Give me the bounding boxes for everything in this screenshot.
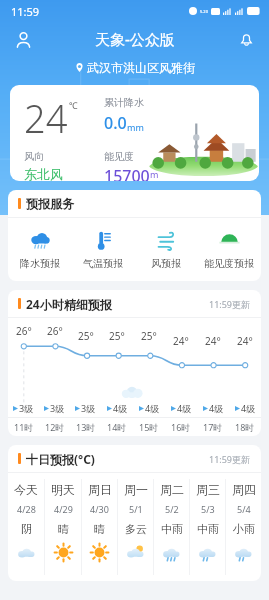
staticText: 25° [141, 329, 157, 343]
button[interactable]: 明天 [45, 473, 81, 581]
staticText: 周一 [124, 482, 148, 497]
staticText: 3级 [50, 402, 65, 414]
staticText: 15700 [104, 165, 150, 181]
button[interactable]: 24小时精细预报 [8, 290, 261, 436]
staticText: 5/4 [237, 503, 251, 515]
staticText: 4/30 [90, 503, 109, 515]
staticText: 能见度 [104, 150, 134, 163]
staticText: 多云 [125, 522, 147, 536]
staticText: 11:59更新 [209, 298, 251, 310]
staticText: 中雨 [161, 522, 183, 536]
staticText: 预报服务 [26, 196, 74, 211]
staticText: 3级 [81, 402, 96, 414]
staticText: 25° [78, 329, 94, 343]
staticText: 24小时精细预报 [26, 296, 112, 312]
staticText: 天象-公众版 [95, 29, 175, 49]
button[interactable]: Profile [8, 24, 38, 54]
staticText: 3级 [19, 402, 34, 414]
staticText: 5/1 [129, 503, 143, 515]
button[interactable]: 能见度预报 [198, 225, 260, 274]
staticText: 11:59 [11, 4, 40, 19]
button[interactable]: 24 [10, 85, 259, 181]
button[interactable]: 周一 [118, 473, 153, 581]
staticText: 周二 [160, 482, 184, 497]
button[interactable]: 周二 [154, 473, 189, 581]
staticText: 13时 [76, 421, 96, 433]
staticText: 17时 [203, 421, 223, 433]
staticText: mm [127, 121, 144, 133]
staticText: 能见度预报 [204, 257, 254, 270]
button[interactable]: 风预报 [135, 225, 197, 274]
staticText: 今天 [14, 482, 38, 497]
staticText: 累计降水 [104, 96, 144, 109]
staticText: 24 [24, 92, 68, 144]
staticText: 武汉市洪山区风雅街 [87, 60, 195, 75]
staticText: 4级 [145, 402, 160, 414]
button[interactable]: Notifications [231, 24, 261, 54]
staticText: 26° [16, 324, 32, 338]
staticText: 中雨 [197, 522, 219, 536]
staticText: 18时 [235, 421, 255, 433]
staticText: 风向 [24, 150, 44, 163]
button[interactable]: 今天 [8, 473, 44, 581]
button[interactable]: 周三 [190, 473, 225, 581]
staticText: 5.20 [200, 9, 208, 14]
staticText: m [150, 168, 159, 180]
staticText: 周四 [232, 482, 256, 497]
staticText: 十日预报(°C) [26, 451, 95, 467]
staticText: 11时 [14, 421, 34, 433]
staticText: 0.0 [104, 112, 127, 134]
staticText: 晴 [58, 522, 69, 536]
staticText: ℃ [69, 99, 78, 111]
staticText: 24° [173, 334, 189, 348]
staticText: 降水预报 [20, 257, 60, 270]
staticText: 12时 [45, 421, 65, 433]
staticText: 16时 [171, 421, 191, 433]
staticText: 24° [205, 334, 221, 348]
staticText: 5/2 [165, 503, 179, 515]
staticText: 5/3 [201, 503, 215, 515]
staticText: 阴 [21, 522, 32, 536]
staticText: 东北风 [24, 166, 63, 181]
staticText: 11:59更新 [209, 453, 251, 465]
staticText: 周日 [88, 482, 112, 497]
staticText: 24° [237, 334, 253, 348]
staticText: 周三 [196, 482, 220, 497]
staticText: 4级 [209, 402, 224, 414]
staticText: 25° [109, 329, 125, 343]
button[interactable]: 周四 [226, 473, 261, 581]
staticText: 26° [47, 324, 63, 338]
staticText: 风预报 [151, 257, 181, 270]
staticText: 15时 [139, 421, 159, 433]
button[interactable]: 武汉市洪山区风雅街 [0, 56, 269, 78]
button[interactable]: 气温预报 [72, 225, 134, 274]
staticText: 气温预报 [83, 257, 123, 270]
staticText: 4/28 [17, 503, 36, 515]
button[interactable]: 降水预报 [9, 225, 71, 274]
staticText: 4级 [177, 402, 192, 414]
staticText: 14时 [107, 421, 127, 433]
staticText: 明天 [51, 482, 75, 497]
staticText: 4级 [113, 402, 128, 414]
staticText: 4级 [241, 402, 256, 414]
button[interactable]: 周日 [82, 473, 117, 581]
staticText: 晴 [94, 522, 105, 536]
staticText: 4/29 [54, 503, 73, 515]
staticText: 小雨 [233, 522, 255, 536]
